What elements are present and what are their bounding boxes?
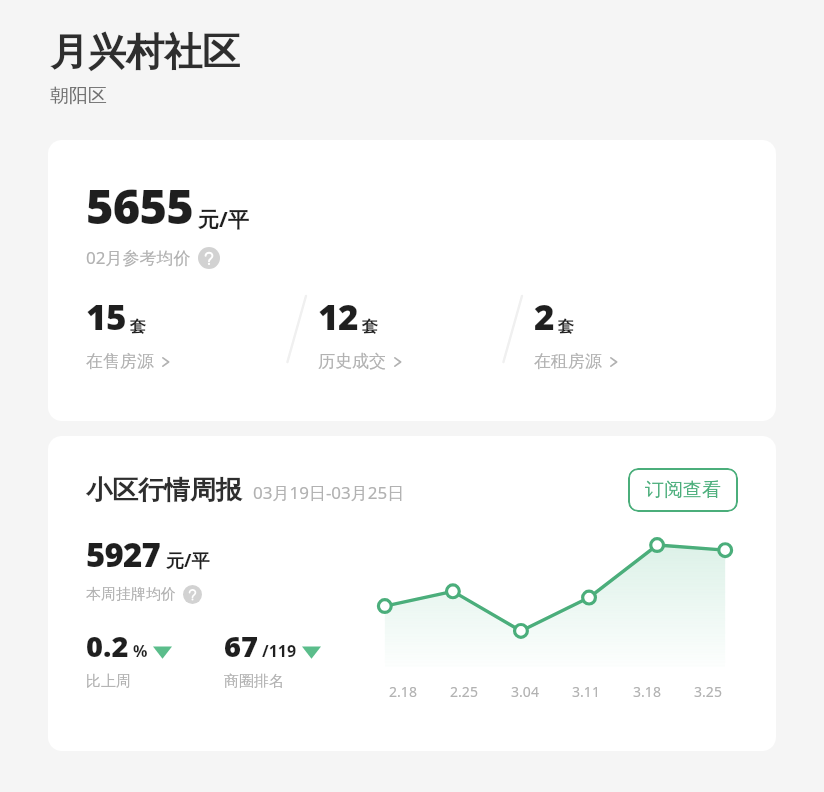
staticText: 套 <box>130 317 146 337</box>
staticText: 3.11 <box>572 682 600 701</box>
button[interactable]: 12 <box>318 293 498 372</box>
staticText: % <box>133 640 148 662</box>
staticText: 2.25 <box>450 682 478 701</box>
staticText: /119 <box>262 640 297 662</box>
staticText: 套 <box>362 317 378 337</box>
staticText: 15 <box>86 293 126 341</box>
button[interactable]: 67 <box>224 626 321 691</box>
staticText: 3.18 <box>633 682 661 701</box>
staticText: 比上周 <box>86 672 131 691</box>
staticText: 订阅查看 <box>645 478 721 502</box>
staticText: 套 <box>558 317 574 337</box>
staticText: 在售房源 <box>86 351 154 372</box>
staticText: 3.25 <box>694 682 722 701</box>
staticText: 历史成交 <box>318 351 386 372</box>
staticText: 本周挂牌均价 <box>86 585 176 604</box>
button[interactable]: 说明 <box>183 585 202 604</box>
button[interactable]: 15 <box>86 293 282 372</box>
staticText: 商圈排名 <box>224 672 284 691</box>
staticText: 12 <box>318 293 358 341</box>
staticText: 月兴村社区 <box>50 28 240 76</box>
staticText: 朝阳区 <box>50 84 107 108</box>
staticText: 小区行情周报 <box>86 474 242 507</box>
staticText: 5655 <box>86 174 193 238</box>
staticText: 67 <box>224 626 258 665</box>
button[interactable]: 2 <box>534 293 620 372</box>
staticText: 元/平 <box>166 548 210 573</box>
staticText: 03月19日-03月25日 <box>253 481 405 504</box>
staticText: 02月参考均价 <box>86 246 191 269</box>
staticText: 5927 <box>86 532 161 577</box>
staticText: 0.2 <box>86 626 129 665</box>
staticText: 3.04 <box>511 682 539 701</box>
staticText: 2 <box>534 293 554 341</box>
button[interactable]: 说明 <box>198 247 220 269</box>
button[interactable]: 挂牌均价走势图 <box>372 526 738 701</box>
button[interactable]: 0.2 <box>86 626 224 691</box>
button[interactable]: 订阅查看 <box>628 468 738 512</box>
staticText: 元/平 <box>198 205 249 234</box>
staticText: 2.18 <box>389 682 417 701</box>
staticText: 在租房源 <box>534 351 602 372</box>
